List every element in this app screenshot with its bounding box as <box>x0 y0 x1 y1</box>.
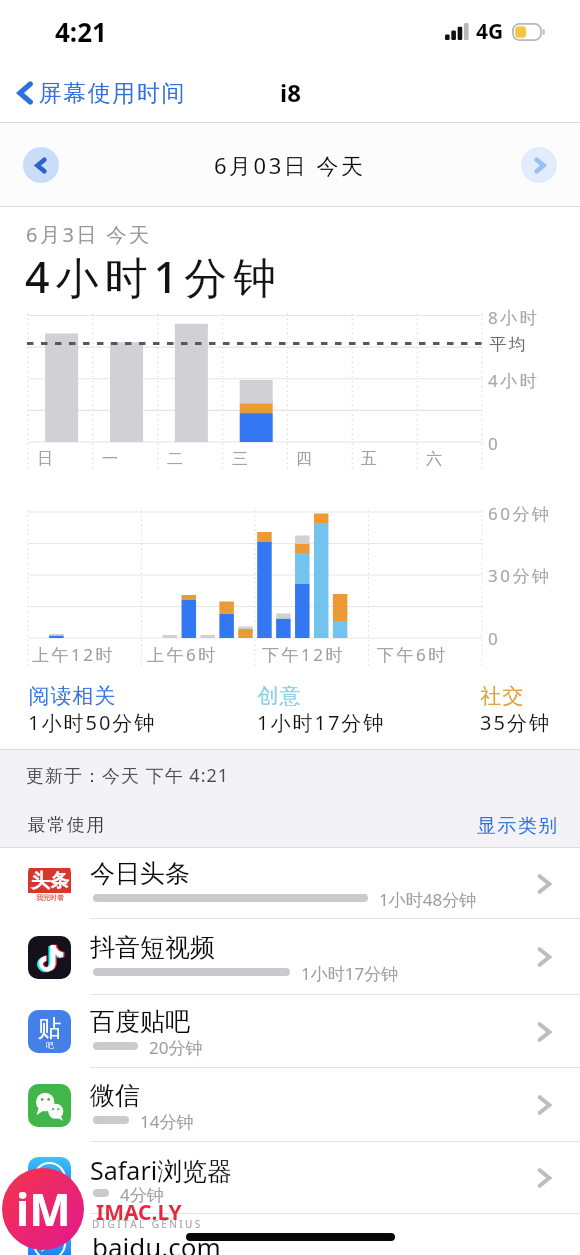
staticText: 创意 <box>257 683 301 709</box>
staticText: 4小时1分钟 <box>25 247 283 306</box>
staticText: 8小时 <box>488 306 540 329</box>
staticText: IMAC.LY <box>96 1198 182 1227</box>
staticText: 我完时看 <box>36 893 64 902</box>
staticText: 1小时50分钟 <box>28 709 157 736</box>
other: Details <box>537 1092 552 1118</box>
staticText: 吧 <box>46 1040 54 1050</box>
other: Details <box>537 871 552 897</box>
staticText: 上午6时 <box>147 643 218 666</box>
staticText: 抖音短视频 <box>90 932 215 963</box>
staticText: 头条 <box>31 869 69 893</box>
staticText: 更新于：今天 下午 4:21 <box>26 763 230 788</box>
button[interactable]: Safari浏览器 <box>0 1142 580 1214</box>
staticText: 最常使用 <box>27 814 105 837</box>
staticText: 五 <box>361 449 375 469</box>
staticText: iM <box>16 1179 71 1239</box>
staticText: 百度贴吧 <box>90 1006 190 1037</box>
staticText: 0 <box>488 627 501 650</box>
staticText: 4分钟 <box>120 1183 164 1206</box>
staticText: 微信 <box>90 1080 140 1111</box>
staticText: 4:21 <box>55 14 107 49</box>
staticText: 4小时 <box>488 369 540 392</box>
button[interactable]: 微信 <box>0 1068 580 1142</box>
button[interactable]: Previous day <box>23 147 59 183</box>
staticText: 贴 <box>38 1014 61 1043</box>
staticText: 30分钟 <box>488 564 552 587</box>
staticText: 屏幕使用时间 <box>38 79 185 108</box>
staticText: 下午6时 <box>377 643 448 666</box>
staticText: 日 <box>37 449 51 469</box>
staticText: 社交 <box>480 683 524 709</box>
staticText: DIGITAL GENIUS <box>92 1217 203 1231</box>
staticText: 0 <box>488 432 501 455</box>
other: Details <box>537 1165 552 1191</box>
staticText: 二 <box>167 449 181 469</box>
staticText: baidu.com <box>92 1229 221 1255</box>
button[interactable]: 贴 <box>0 995 580 1068</box>
other: Details <box>537 1019 552 1045</box>
staticText: 1小时17分钟 <box>257 709 386 736</box>
staticText: 6月3日 今天 <box>26 221 152 248</box>
staticText: 阅读相关 <box>28 683 116 709</box>
staticText: 一 <box>102 449 116 469</box>
staticText: i8 <box>280 76 301 109</box>
staticText: Safari浏览器 <box>90 1153 233 1187</box>
staticText: 20分钟 <box>149 1036 203 1059</box>
staticText: 下午12时 <box>262 643 345 666</box>
staticText: 上午12时 <box>32 643 115 666</box>
button[interactable]: 屏幕使用时间 <box>14 77 185 109</box>
staticText: 35分钟 <box>480 709 551 736</box>
button[interactable]: 抖音短视频 <box>0 919 580 995</box>
staticText: 1小时17分钟 <box>301 962 399 985</box>
staticText: 显示类别 <box>476 814 558 838</box>
staticText: 六 <box>426 449 440 469</box>
staticText: 6月03日 今天 <box>214 150 366 180</box>
staticText: 4G <box>476 17 504 46</box>
staticText: 平均 <box>488 334 527 355</box>
button[interactable]: 显示类别 <box>470 810 564 842</box>
staticText: 14分钟 <box>140 1110 194 1133</box>
staticText: 60分钟 <box>488 502 552 525</box>
staticText: 四 <box>296 449 310 469</box>
staticText: 三 <box>232 449 246 469</box>
button[interactable]: 头条 <box>0 848 580 919</box>
other: Details <box>537 944 552 970</box>
staticText: 今日头条 <box>90 858 190 889</box>
staticText: 1小时48分钟 <box>379 888 477 911</box>
button[interactable]: Next day <box>521 147 557 183</box>
